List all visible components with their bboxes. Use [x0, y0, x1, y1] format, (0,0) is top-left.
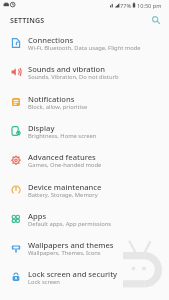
button[interactable]: Search — [147, 12, 164, 29]
button[interactable]: Display — [0, 118, 169, 147]
staticText: Lock screen and security — [28, 269, 118, 279]
staticText: Apps — [28, 211, 47, 221]
staticText: Brightness, Home screen — [28, 132, 97, 140]
staticText: Games, One-handed mode — [28, 161, 102, 169]
staticText: Wi-Fi, Bluetooth, Data usage, Flight mod… — [28, 44, 141, 52]
button[interactable]: Lock screen and security — [0, 264, 169, 293]
staticText: Device maintenance — [28, 182, 102, 192]
button[interactable]: Connections — [0, 30, 169, 59]
staticText: SETTINGS — [10, 15, 45, 25]
staticText: Connections — [28, 35, 74, 45]
button[interactable]: Notifications — [0, 89, 169, 118]
staticText: Advanced features — [28, 152, 96, 162]
staticText: Wallpapers, Themes, Icons — [28, 249, 101, 257]
staticText: Notifications — [28, 94, 75, 104]
button[interactable]: Sounds and vibration — [0, 59, 169, 88]
staticText: Wallpapers and themes — [28, 240, 114, 250]
button[interactable]: Wallpapers and themes — [0, 235, 169, 264]
button[interactable]: Apps — [0, 206, 169, 235]
staticText: Default apps, App permissions — [28, 220, 112, 228]
staticText: Block, allow, prioritise — [28, 103, 88, 111]
staticText: Battery, Storage, Memory — [28, 191, 98, 199]
staticText: Sounds, Vibration, Do not disturb — [28, 73, 119, 81]
staticText: Sounds and vibration — [28, 64, 106, 74]
button[interactable]: Device maintenance — [0, 177, 169, 206]
staticText: Display — [28, 123, 55, 133]
button[interactable]: Advanced features — [0, 147, 169, 176]
staticText: 77% — [120, 2, 132, 10]
staticText: Lock screen — [28, 278, 60, 286]
staticText: 10:50 pm — [137, 2, 162, 10]
